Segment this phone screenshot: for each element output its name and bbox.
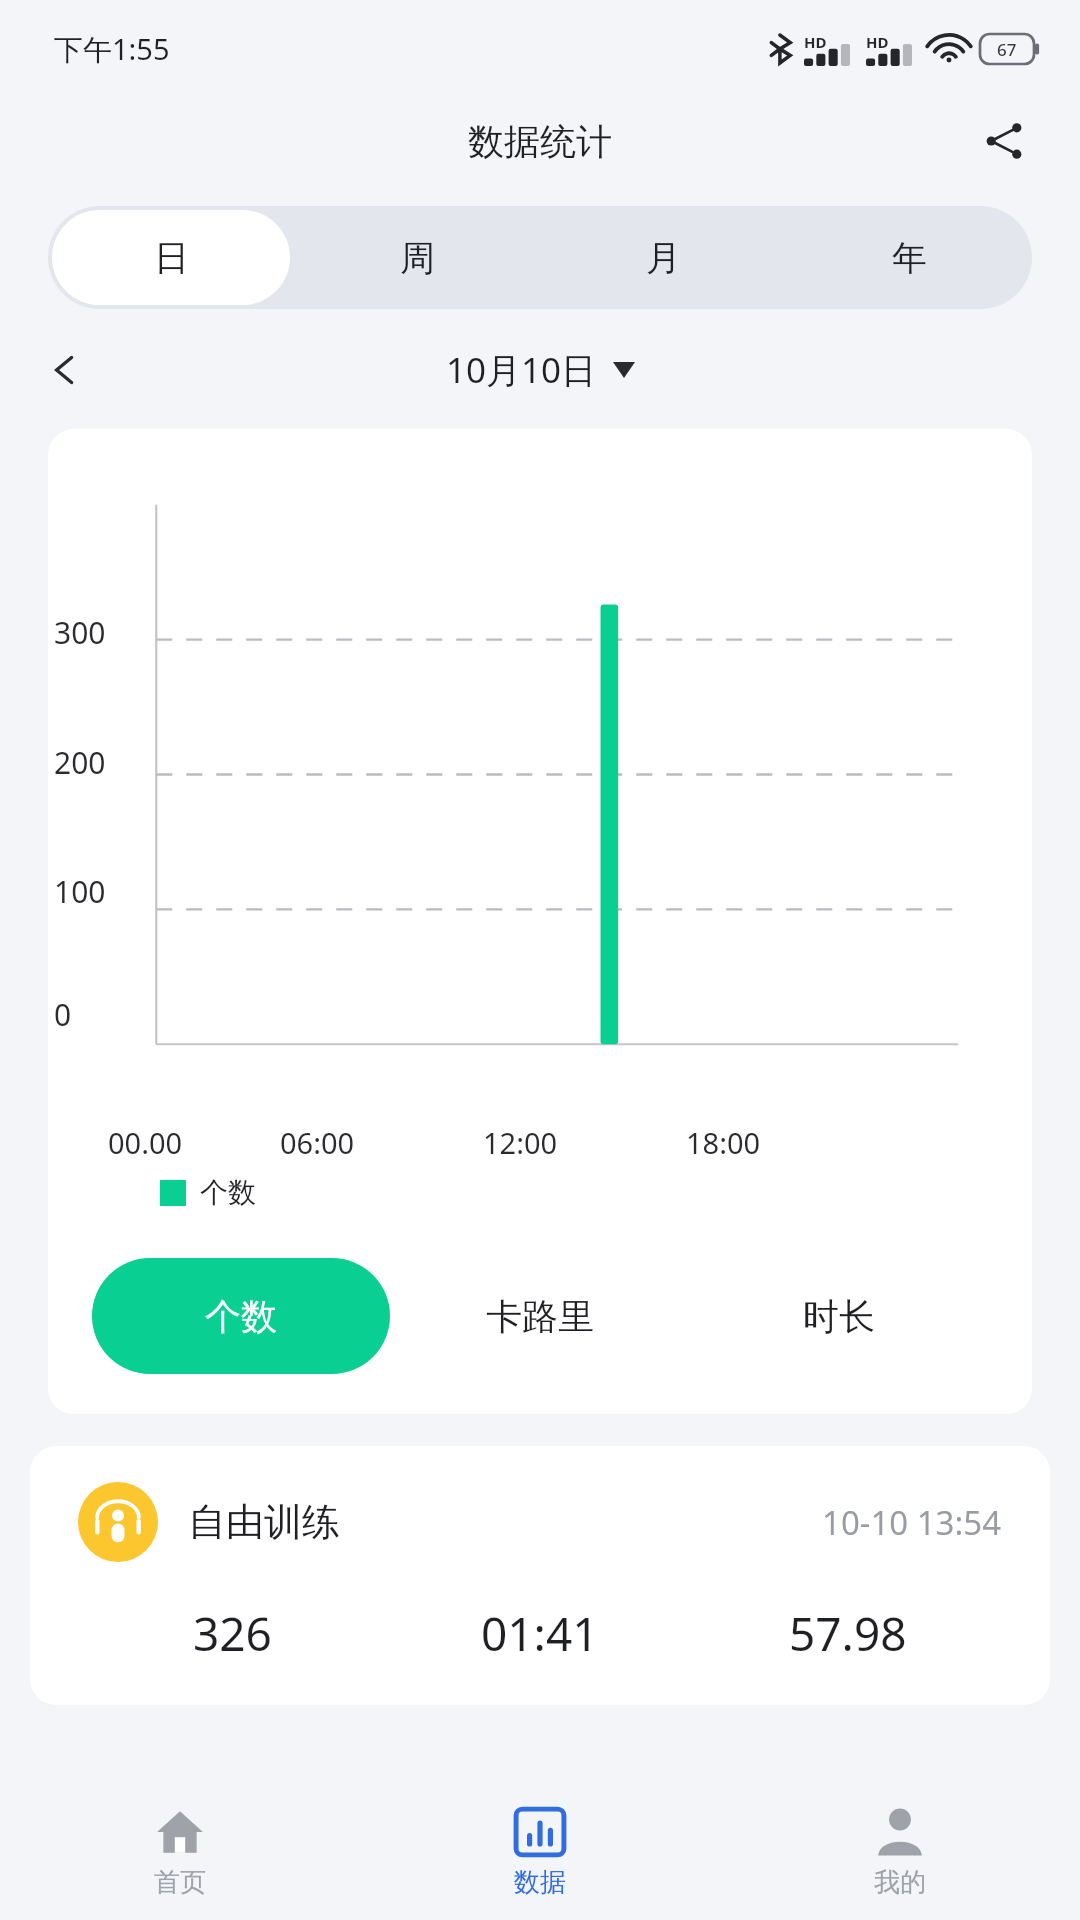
staticText: 100 [54,871,106,912]
staticText: HD [804,32,827,52]
staticText: HD [866,32,889,52]
staticText: 我的 [874,1866,926,1899]
staticText: 10月10日 [446,346,597,394]
staticText: 周 [400,236,435,280]
button[interactable]: Previous day [30,335,100,405]
staticText: 200 [54,742,106,783]
staticText: 12:00 [483,1123,558,1162]
staticText: 00.00 [108,1123,183,1162]
staticText: 0 [54,994,72,1035]
button[interactable]: Share [972,109,1036,173]
staticText: 年 [892,236,927,280]
staticText: 326 [193,1602,272,1665]
staticText: 下午1:55 [54,29,170,69]
staticText: 自由训练 [188,1498,340,1546]
staticText: 首页 [154,1866,206,1899]
staticText: 个数 [205,1294,277,1339]
staticText: 时长 [803,1294,875,1339]
button[interactable]: 首页 [0,1784,360,1920]
staticText: 月 [646,236,681,280]
button[interactable]: 自由训练 [30,1446,1050,1705]
staticText: 06:00 [280,1123,355,1162]
staticText: 个数 [200,1175,256,1210]
button[interactable]: 我的 [720,1784,1080,1920]
staticText: 18:00 [686,1123,761,1162]
button[interactable]: 卡路里 [390,1258,689,1374]
staticText: 01:41 [481,1602,599,1665]
staticText: 数据 [514,1866,566,1899]
staticText: 数据统计 [468,119,612,164]
button[interactable]: 10月10日 [446,346,635,394]
button[interactable]: 周 [298,210,536,305]
staticText: 300 [54,612,106,653]
button[interactable]: 个数 [92,1258,390,1374]
button[interactable]: 数据 [360,1784,720,1920]
button[interactable]: 时长 [689,1258,988,1374]
staticText: 57.98 [789,1602,907,1665]
staticText: 67 [997,38,1017,61]
staticText: 卡路里 [486,1294,594,1339]
staticText: 日 [154,236,189,280]
button[interactable]: 年 [790,210,1028,305]
button[interactable]: 日 [52,210,290,305]
button[interactable]: 月 [544,210,782,305]
staticText: 10-10 13:54 [822,1500,1002,1545]
